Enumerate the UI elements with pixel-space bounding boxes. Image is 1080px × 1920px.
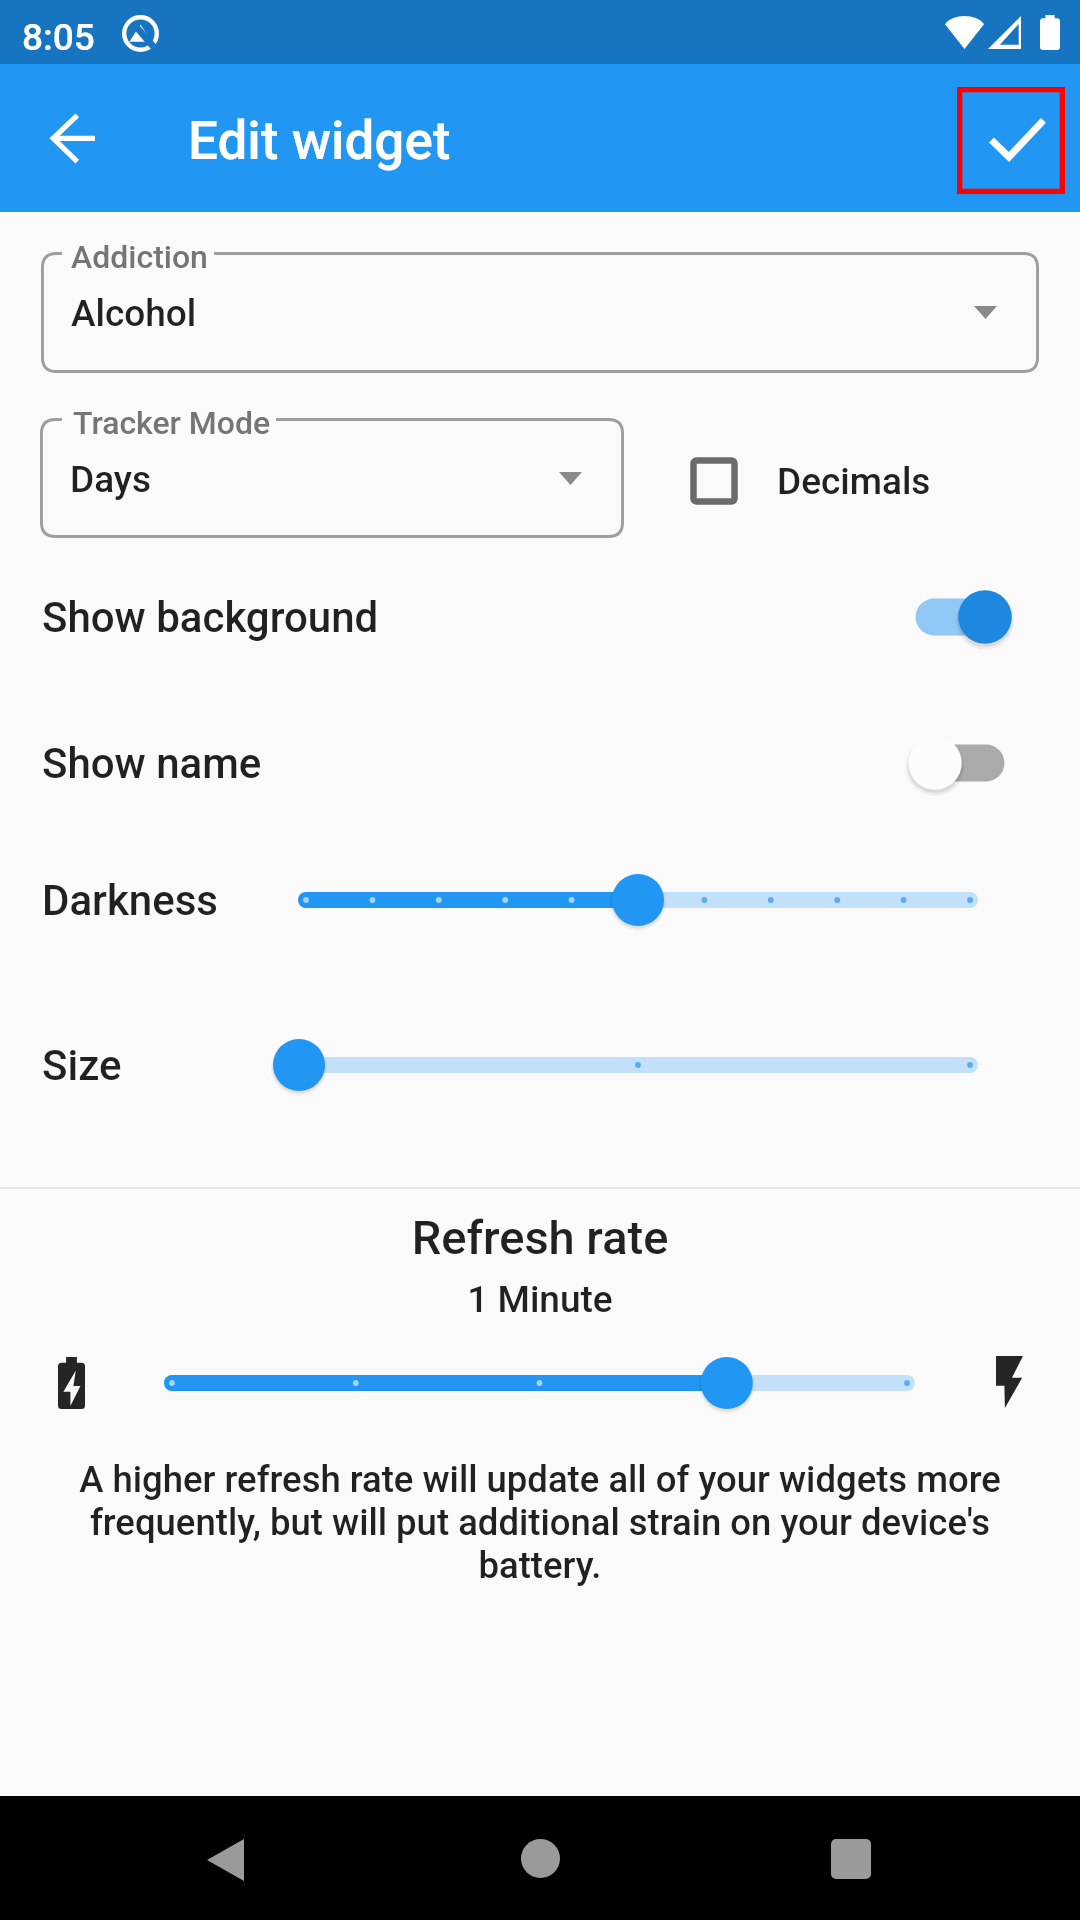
staticText: 8:05 <box>22 16 95 59</box>
button[interactable]: Back <box>170 1805 280 1915</box>
button[interactable]: Home <box>485 1803 595 1913</box>
staticText: Decimals <box>777 460 931 503</box>
staticText: Refresh rate <box>0 1210 1080 1265</box>
button[interactable]: Show background <box>0 564 1080 670</box>
button[interactable]: Show name <box>0 710 1080 816</box>
staticText: Size <box>42 1041 122 1090</box>
button[interactable]: Navigate up <box>28 96 118 184</box>
staticText: Darkness <box>42 876 218 925</box>
button[interactable]: Addiction <box>41 252 1039 373</box>
staticText: 1 Minute <box>0 1278 1080 1321</box>
button[interactable]: Recent apps <box>796 1804 906 1914</box>
staticText: Alcohol <box>71 292 197 335</box>
other: Quick settings <box>122 15 159 52</box>
staticText: Show name <box>42 739 262 788</box>
button[interactable] <box>273 1027 1003 1103</box>
staticText: Edit widget <box>188 110 451 172</box>
button[interactable] <box>273 862 1003 938</box>
button[interactable]: Done <box>957 87 1065 194</box>
button[interactable]: Decimals <box>683 442 931 520</box>
button[interactable]: Tracker Mode <box>40 418 624 538</box>
staticText: A higher refresh rate will update all of… <box>46 1458 1034 1587</box>
other: Battery saving <box>58 1357 85 1409</box>
button[interactable] <box>139 1353 940 1413</box>
staticText: Days <box>70 458 151 501</box>
staticText: Show background <box>42 593 379 642</box>
other: Fast refresh <box>996 1356 1023 1408</box>
staticText: Tracker Mode <box>73 404 271 442</box>
staticText: Addiction <box>71 238 208 276</box>
